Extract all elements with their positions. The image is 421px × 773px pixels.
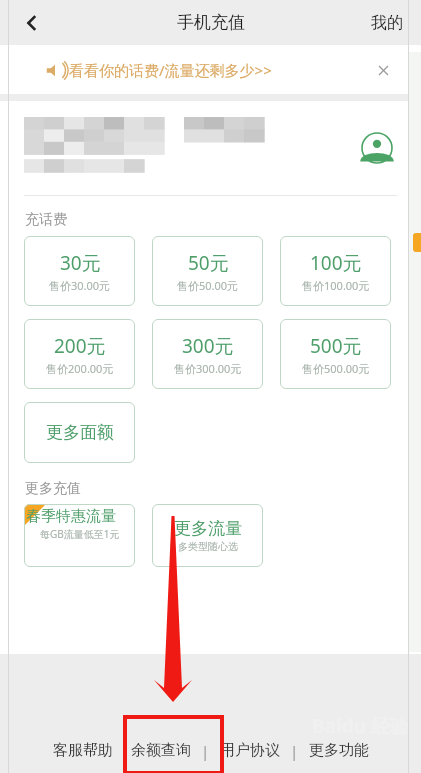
staticText: 售价100.00元 (302, 278, 370, 293)
staticText: 每GB流量低至1元 (40, 527, 120, 541)
staticText: 售价30.00元 (49, 278, 111, 293)
staticText: 500元 (310, 333, 362, 359)
button[interactable]: Close banner (371, 58, 395, 82)
staticText: 100元 (310, 250, 362, 276)
staticText: | (290, 741, 299, 761)
staticText: 售价300.00元 (174, 361, 242, 376)
staticText: 看看你的话费/流量还剩多少>> (69, 60, 272, 80)
button[interactable]: 200元 (24, 319, 135, 389)
staticText: 更多流量 (174, 518, 242, 539)
staticText: 客服帮助 (53, 741, 113, 760)
staticText: 手机充值 (177, 12, 245, 33)
button[interactable]: 更多功能 (306, 737, 372, 764)
staticText: 更多面额 (46, 422, 114, 443)
button[interactable]: 50元 (152, 236, 263, 306)
staticText: 我的 (371, 13, 403, 33)
button[interactable]: 30元 (24, 236, 135, 306)
button[interactable]: 客服帮助 (50, 737, 116, 764)
staticText: 用户协议 (220, 741, 280, 760)
staticText: 更多充值 (25, 480, 81, 498)
staticText: 充话费 (25, 211, 67, 229)
button[interactable]: 春季特惠流量 (24, 504, 135, 567)
staticText: 春季特惠流量 (26, 507, 135, 526)
staticText: 售价50.00元 (177, 278, 239, 293)
button[interactable]: 更多面额 (24, 402, 135, 463)
staticText: 300元 (182, 333, 234, 359)
staticText: 30元 (60, 250, 101, 276)
button[interactable]: Account avatar (0, 101, 421, 195)
staticText: 余额查询 (131, 741, 191, 760)
button[interactable]: 看看你的话费/流量还剩多少>> (0, 45, 421, 94)
staticText: 更多功能 (309, 741, 369, 760)
staticText: 售价200.00元 (46, 361, 114, 376)
button[interactable]: 更多流量 (152, 504, 263, 567)
button[interactable]: 余额查询 (128, 737, 194, 764)
staticText: | (201, 741, 210, 761)
button[interactable]: Back (10, 1, 54, 45)
button[interactable]: 我的 (365, 7, 409, 39)
staticText: 售价500.00元 (302, 361, 370, 376)
button[interactable]: 300元 (152, 319, 263, 389)
staticText: 多类型随心选 (178, 540, 238, 553)
button[interactable]: Account avatar (361, 132, 393, 164)
button[interactable]: 100元 (280, 236, 391, 306)
staticText: 200元 (54, 333, 106, 359)
button[interactable]: 用户协议 (217, 737, 283, 764)
button[interactable]: 500元 (280, 319, 391, 389)
staticText: 50元 (188, 250, 229, 276)
